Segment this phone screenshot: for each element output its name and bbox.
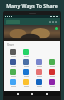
- button[interactable]: Chrome: [22, 69, 30, 77]
- button[interactable]: Keep: [22, 79, 30, 87]
- button[interactable]: Action: [55, 21, 57, 23]
- button[interactable]: More: [48, 79, 56, 87]
- button[interactable]: Facebook: [9, 59, 17, 67]
- button[interactable]: Maps: [48, 69, 56, 77]
- staticText: Share: [7, 43, 15, 47]
- button[interactable]: Action: [4, 18, 60, 25]
- button[interactable]: Contacts: [9, 49, 17, 57]
- button[interactable]: Gmail: [35, 69, 43, 77]
- button[interactable]: Action: [49, 21, 51, 23]
- button[interactable]: Twitter: [9, 79, 17, 87]
- staticText: Many Ways To Share: [6, 2, 58, 9]
- button[interactable]: WhatsApp: [22, 49, 30, 57]
- button[interactable]: Action: [52, 21, 54, 23]
- button[interactable]: Messenger: [22, 59, 30, 67]
- button[interactable]: Drive: [35, 59, 43, 67]
- button[interactable]: Files: [35, 79, 43, 87]
- button[interactable]: Photos: [9, 69, 17, 77]
- button[interactable]: Messages: [48, 59, 56, 67]
- button[interactable]: WhatsApp: [55, 27, 58, 30]
